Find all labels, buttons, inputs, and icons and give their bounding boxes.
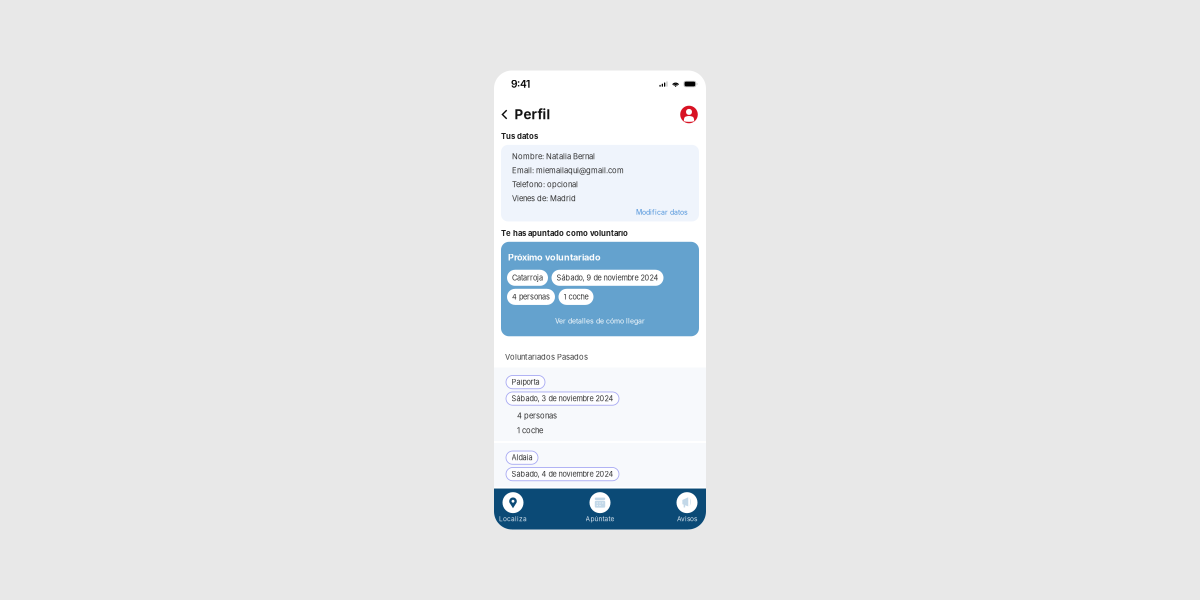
staticText: Catarroja <box>512 273 543 282</box>
staticText: Perfil <box>514 106 550 122</box>
staticText: Te has apuntado como voluntario <box>501 228 628 238</box>
staticText: 4 personas <box>517 411 557 420</box>
staticText: Paiporta <box>511 378 539 387</box>
staticText: Próximo voluntariado <box>508 252 601 263</box>
button[interactable]: Avisos <box>668 492 706 523</box>
staticText: Avisos <box>677 515 697 523</box>
staticText: Voluntariados Pasados <box>505 352 588 361</box>
staticText: Sábado, 3 de noviembre 2024 <box>511 394 613 403</box>
staticText: Modificar datos <box>636 208 688 216</box>
staticText: Localiza <box>499 515 527 523</box>
staticText: 9:41 <box>511 78 530 90</box>
button[interactable]: Paiporta <box>494 367 706 441</box>
button[interactable]: Localiza <box>494 492 532 523</box>
staticText: Tus datos <box>501 131 538 141</box>
staticText: Nombre: Natalia Bernal <box>512 152 595 161</box>
staticText: Sábado, 9 de noviembre 2024 <box>556 273 658 282</box>
staticText: Sábado, 4 de noviembre 2024 <box>511 470 613 479</box>
staticText: Aldaia <box>511 453 532 462</box>
staticText: 1 coche <box>517 426 543 435</box>
staticText: Ver detalles de cómo llegar <box>555 317 645 325</box>
staticText: Email: miemailaqui@gmail.com <box>512 166 624 175</box>
staticText: 4 personas <box>512 292 550 301</box>
button[interactable]: Apúntate <box>581 492 619 523</box>
button[interactable]: Perfil de usuario <box>678 103 700 125</box>
staticText: Apúntate <box>585 515 614 523</box>
button[interactable]: Atrás <box>498 103 511 126</box>
button[interactable]: Aldaia <box>494 443 706 487</box>
button[interactable]: Modificar datos <box>501 203 699 221</box>
staticText: Telefono: opcional <box>512 180 578 189</box>
button[interactable]: Ver detalles de cómo llegar <box>501 305 699 336</box>
staticText: 1 coche <box>563 292 588 301</box>
staticText: Vienes de: Madrid <box>512 194 576 203</box>
